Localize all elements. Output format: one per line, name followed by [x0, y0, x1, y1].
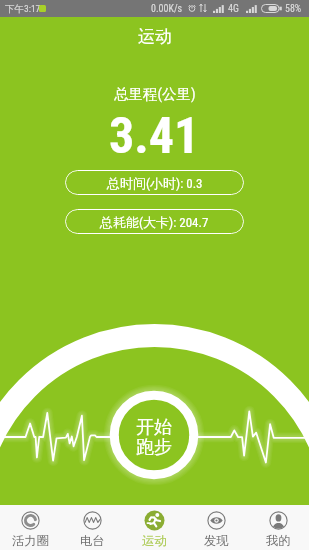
staticText: 发现 — [204, 533, 229, 548]
staticText: 运动 — [138, 26, 172, 47]
staticText: 运动 — [142, 533, 167, 548]
button[interactable]: 开始 跑步 — [101, 382, 207, 488]
staticText: 总时间(小时): 0.3 — [107, 175, 203, 191]
button[interactable]: 总时间(小时): 0.3 — [65, 170, 244, 195]
staticText: 开始 跑步 — [136, 416, 172, 458]
button[interactable]: 我的 — [247, 507, 309, 548]
staticText: 活力圈 — [12, 533, 49, 548]
staticText: 3.41 — [109, 107, 200, 166]
staticText: 4G — [228, 3, 239, 15]
button[interactable]: 活力圈 — [0, 507, 61, 548]
staticText: 58% — [285, 3, 302, 15]
staticText: 0.00K/s — [151, 3, 183, 15]
button[interactable]: 总耗能(大卡): 204.7 — [65, 209, 244, 234]
button[interactable]: 电台 — [61, 507, 123, 548]
staticText: 电台 — [80, 533, 105, 548]
staticText: 总耗能(大卡): 204.7 — [100, 214, 209, 230]
button[interactable]: 发现 — [185, 507, 247, 548]
staticText: 总里程(公里) — [114, 85, 196, 103]
button[interactable]: 运动 — [123, 507, 185, 548]
staticText: 我的 — [266, 533, 291, 548]
staticText: 下午3:17 — [5, 3, 41, 15]
